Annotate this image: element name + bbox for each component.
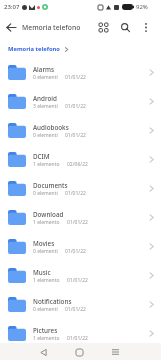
staticText: Alarms	[33, 65, 55, 74]
staticText: 01/01/22	[65, 248, 86, 255]
staticText: 02/06/22	[67, 161, 88, 168]
staticText: 92%	[136, 3, 148, 11]
staticText: 01/01/22	[67, 277, 88, 284]
button[interactable]	[140, 21, 152, 33]
button[interactable]: Movies	[0, 232, 161, 261]
button[interactable]: Download	[0, 203, 161, 232]
staticText: 01/01/22	[67, 219, 88, 226]
staticText: Download	[33, 210, 64, 219]
staticText: 0 elementi	[33, 190, 58, 197]
staticText: 0 elementi	[33, 132, 58, 139]
button[interactable]: Documents	[0, 174, 161, 203]
staticText: 01/01/22	[65, 306, 86, 313]
staticText: 01/01/22	[65, 190, 86, 197]
staticText: 01/01/22	[65, 132, 86, 139]
button[interactable]: Notifications	[0, 290, 161, 319]
staticText: Movies	[33, 239, 55, 248]
button[interactable]	[96, 20, 110, 34]
staticText: Notifications	[33, 297, 72, 306]
staticText: Memoria telefono	[8, 45, 60, 53]
staticText: 1 elemento	[33, 277, 60, 284]
staticText: 23:07	[4, 3, 20, 11]
staticText: Pictures	[33, 326, 58, 335]
button[interactable]: Android	[0, 87, 161, 116]
staticText: 01/01/22	[67, 335, 88, 342]
staticText: 1 elemento	[33, 219, 60, 226]
staticText: 3 elementi	[33, 103, 58, 110]
button[interactable]: Alarms	[0, 58, 161, 87]
button[interactable]	[108, 345, 122, 359]
staticText: 01/01/22	[65, 103, 86, 110]
staticText: Android	[33, 94, 57, 103]
staticText: DCIM	[33, 152, 50, 161]
staticText: 0 elementi	[33, 306, 58, 313]
button[interactable]: Pictures	[0, 319, 161, 348]
button[interactable]	[6, 22, 16, 32]
staticText: Memoria telefono	[22, 23, 81, 32]
staticText: 1 elemento	[33, 335, 60, 342]
button[interactable]	[36, 345, 50, 359]
button[interactable]	[118, 20, 132, 34]
staticText: 0 elementi	[33, 74, 58, 81]
staticText: Music	[33, 268, 51, 277]
staticText: Documents	[33, 181, 68, 190]
button[interactable]: DCIM	[0, 145, 161, 174]
button[interactable]: Audiobooks	[0, 116, 161, 145]
staticText: 1 elemento	[33, 161, 60, 168]
button[interactable]: Music	[0, 261, 161, 290]
button[interactable]	[72, 345, 86, 359]
button[interactable]: Memoria telefono	[8, 45, 60, 53]
staticText: 0 elementi	[33, 248, 58, 255]
staticText: Audiobooks	[33, 123, 69, 132]
staticText: 01/01/22	[65, 74, 86, 81]
